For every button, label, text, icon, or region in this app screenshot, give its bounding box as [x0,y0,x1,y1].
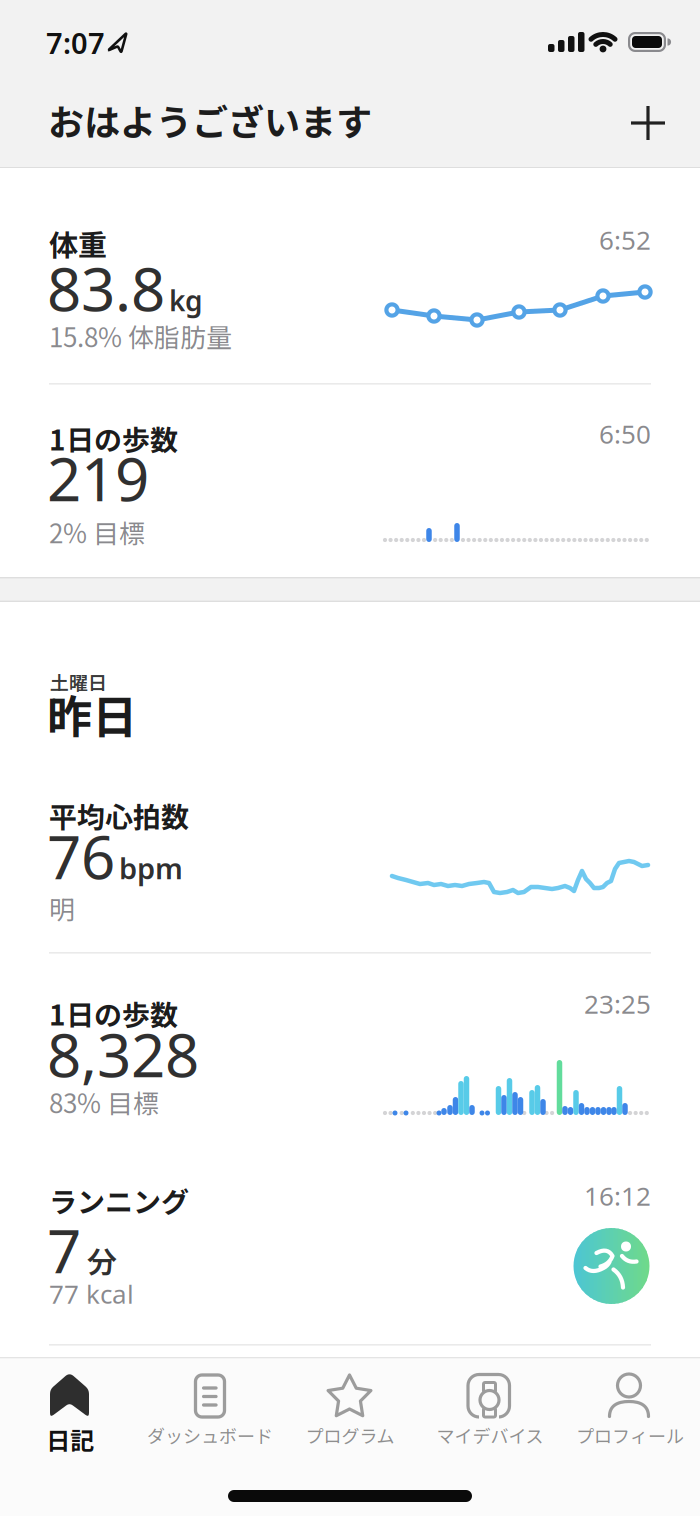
staticText: 76 [47,815,115,897]
staticText: ダッシュボード [147,1422,273,1448]
staticText: マイデバイス [436,1422,543,1448]
staticText: 土曜日 [50,668,107,695]
staticText: 2% 目標 [49,513,145,551]
staticText: 体重 [49,222,107,264]
button[interactable]: 追加 [616,91,680,155]
staticText: 1日の歩数 [49,418,178,458]
staticText: kg [169,281,203,319]
staticText: 6:50 [599,416,651,451]
button[interactable]: 1日の歩数 [0,952,700,1160]
staticText: 83.8 [47,247,165,329]
staticText: 23:25 [584,986,651,1021]
staticText: 219 [47,437,149,519]
button[interactable]: プロフィール [560,1370,700,1460]
staticText: 日記 [46,1422,94,1457]
staticText: 8,328 [47,1013,199,1095]
staticText: 83% 目標 [49,1083,159,1121]
staticText: bpm [119,848,183,888]
staticText: 昨日 [47,681,137,746]
staticText: 6:52 [599,222,651,257]
button[interactable]: プログラム [280,1370,420,1460]
staticText: 分 [87,1238,117,1282]
staticText: ランニング [49,1180,189,1220]
button[interactable]: マイデバイス [420,1370,560,1460]
staticText: 7:07 [46,23,105,62]
staticText: 明 [49,889,75,927]
button[interactable]: ランニング [0,1160,700,1344]
button[interactable]: ダッシュボード [140,1370,280,1460]
button[interactable]: 1日の歩数 [0,383,700,577]
staticText: プログラム [305,1422,394,1448]
staticText: 77 kcal [49,1276,134,1311]
staticText: 7 [47,1209,81,1291]
button[interactable]: 体重 [0,168,700,383]
staticText: プロフィール [576,1422,684,1448]
staticText: 平均心拍数 [49,795,189,835]
staticText: 15.8% 体脂肪量 [49,317,232,355]
staticText: 16:12 [584,1178,651,1213]
button[interactable]: 平均心拍数 [0,740,700,952]
button[interactable]: 日記 [0,1370,140,1460]
staticText: おはようございます [48,94,372,146]
staticText: 1日の歩数 [49,993,178,1033]
